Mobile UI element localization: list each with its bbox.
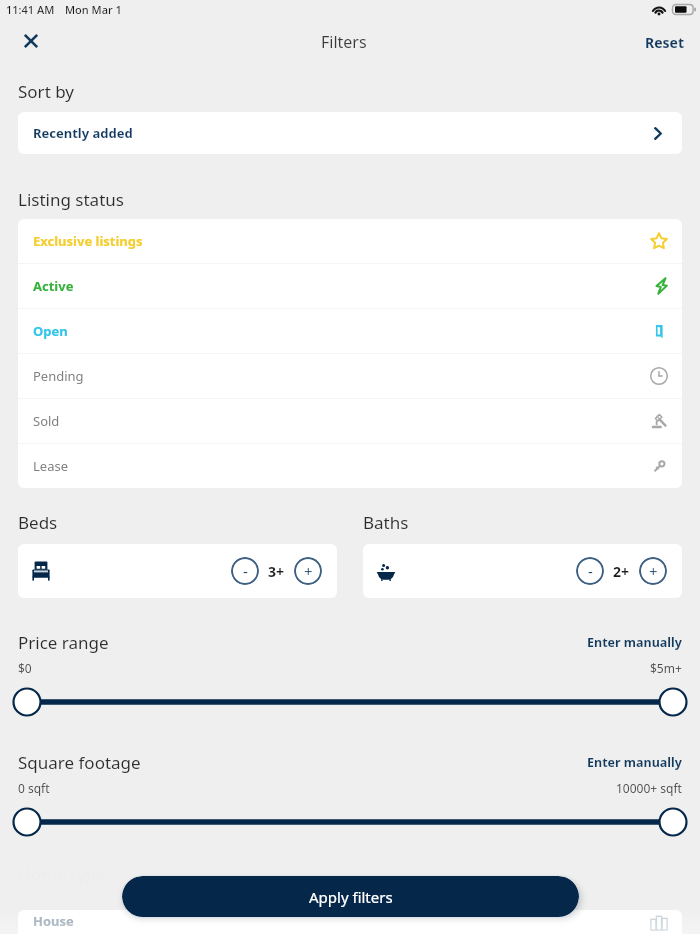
staticText: Apply filters: [309, 887, 393, 907]
button[interactable]: Decrease: [231, 557, 259, 585]
button[interactable]: Open: [18, 309, 682, 353]
staticText: Filters: [321, 31, 367, 53]
button[interactable]: Exclusive listings: [18, 219, 682, 263]
button[interactable]: Pending: [18, 354, 682, 398]
staticText: House: [33, 912, 74, 930]
staticText: Open: [33, 322, 68, 340]
button[interactable]: Recently added: [18, 112, 682, 154]
staticText: $5m+: [650, 660, 682, 676]
staticText: Active: [33, 277, 74, 295]
staticText: 2+: [613, 562, 630, 581]
staticText: 10000+ sqft: [616, 780, 682, 796]
button[interactable]: Reset: [627, 23, 700, 62]
staticText: Exclusive listings: [33, 232, 143, 250]
staticText: Mon Mar 1: [65, 2, 122, 17]
staticText: 3+: [268, 562, 285, 581]
button[interactable]: Enter manually: [587, 754, 682, 771]
staticText: Sort by: [18, 80, 74, 103]
staticText: Sold: [33, 412, 60, 430]
button[interactable]: Decrease: [576, 557, 604, 585]
button[interactable]: Enter manually: [587, 634, 682, 651]
button[interactable]: Active: [18, 264, 682, 308]
staticText: 0 sqft: [18, 780, 50, 796]
staticText: +: [304, 561, 313, 581]
button[interactable]: Lease: [18, 444, 682, 488]
button[interactable]: Sold: [18, 399, 682, 443]
button[interactable]: Apply filters: [122, 876, 579, 917]
button[interactable]: Close: [8, 19, 53, 63]
staticText: Beds: [18, 511, 58, 534]
staticText: +: [649, 561, 658, 581]
button[interactable]: House: [18, 910, 682, 934]
staticText: Enter manually: [587, 634, 682, 651]
staticText: Enter manually: [587, 754, 682, 771]
staticText: 11:41 AM: [6, 2, 55, 17]
staticText: Listing status: [18, 188, 124, 211]
staticText: Reset: [645, 33, 685, 52]
staticText: -: [243, 561, 248, 581]
staticText: Pending: [33, 367, 84, 385]
button[interactable]: Increase: [294, 557, 322, 585]
staticText: Baths: [363, 511, 409, 534]
staticText: -: [588, 561, 593, 581]
staticText: Square footage: [18, 751, 141, 774]
staticText: Lease: [33, 457, 68, 475]
button[interactable]: Increase: [639, 557, 667, 585]
staticText: Price range: [18, 631, 109, 654]
staticText: Recently added: [33, 124, 133, 142]
staticText: $0: [18, 660, 32, 676]
